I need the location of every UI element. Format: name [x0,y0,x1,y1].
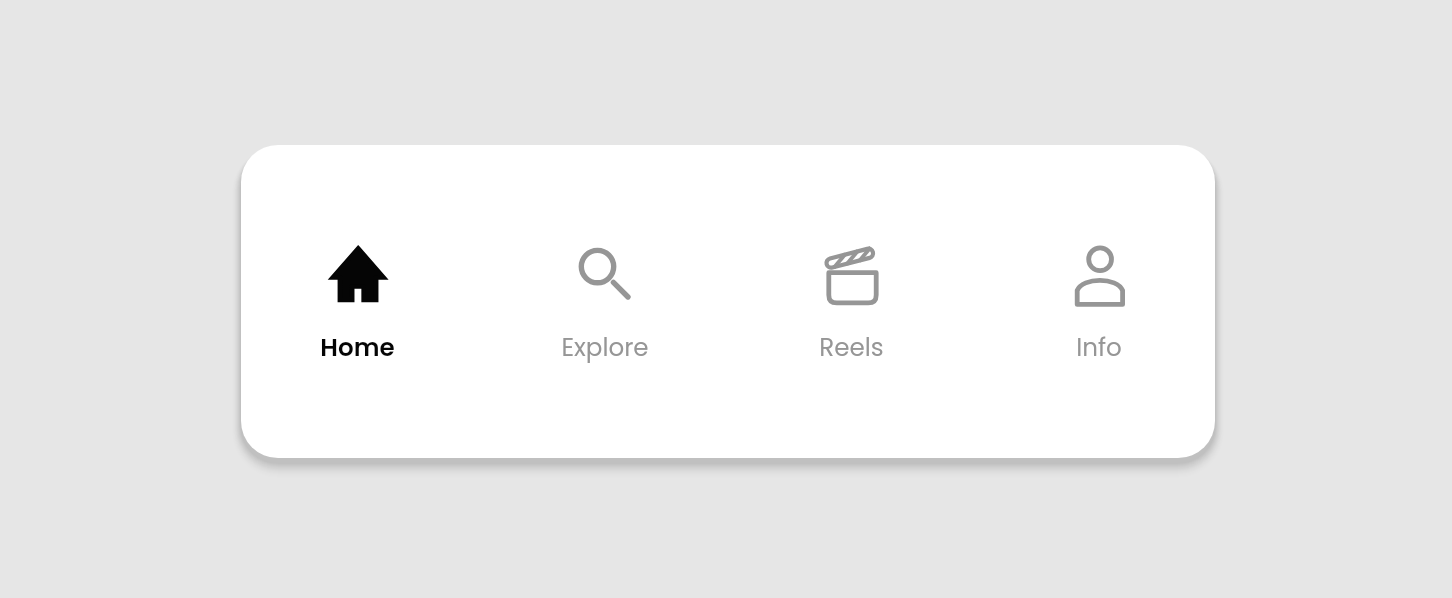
button[interactable]: Explore [481,145,728,458]
staticText: Info [1076,330,1122,364]
staticText: Home [320,330,395,364]
staticText: Explore [561,330,649,364]
button[interactable]: Home [234,145,481,458]
staticText: Reels [819,330,884,364]
button[interactable]: Reels [728,145,975,458]
button[interactable]: Info [975,145,1222,458]
